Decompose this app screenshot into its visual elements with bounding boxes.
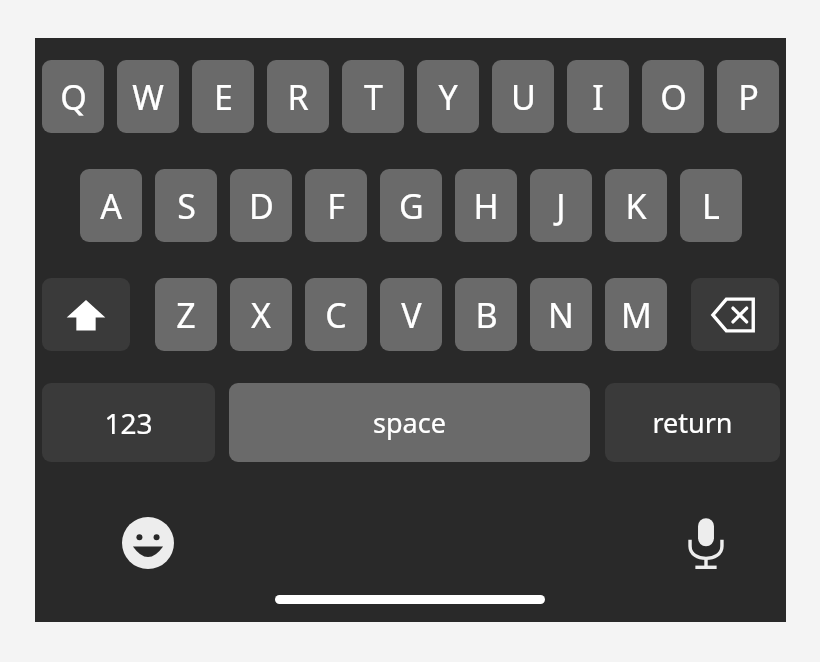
staticText: return (652, 404, 733, 441)
button[interactable]: Dictation (675, 512, 737, 574)
button[interactable]: T (342, 60, 404, 133)
button[interactable]: E (192, 60, 254, 133)
staticText: W (132, 74, 164, 120)
button[interactable]: Z (155, 278, 217, 351)
staticText: J (556, 183, 566, 229)
staticText: T (364, 74, 383, 120)
staticText: B (475, 292, 498, 338)
staticText: N (548, 292, 574, 338)
staticText: L (702, 183, 720, 229)
button[interactable]: space (229, 383, 590, 462)
staticText: K (625, 183, 647, 229)
staticText: Q (60, 74, 87, 120)
button[interactable]: P (717, 60, 779, 133)
button[interactable]: B (455, 278, 517, 351)
staticText: G (399, 183, 424, 229)
staticText: R (287, 74, 309, 120)
staticText: M (621, 292, 652, 338)
button[interactable]: G (380, 169, 442, 242)
staticText: H (473, 183, 499, 229)
button[interactable]: A (80, 169, 142, 242)
staticText: F (327, 183, 345, 229)
button[interactable]: R (267, 60, 329, 133)
button[interactable]: C (305, 278, 367, 351)
button[interactable]: N (530, 278, 592, 351)
button[interactable]: X (230, 278, 292, 351)
button[interactable]: return (605, 383, 780, 462)
staticText: C (325, 292, 347, 338)
staticText: O (660, 74, 687, 120)
button[interactable]: K (605, 169, 667, 242)
button[interactable]: Emoji (117, 512, 179, 574)
staticText: I (592, 74, 604, 120)
staticText: E (214, 74, 233, 120)
button[interactable]: U (492, 60, 554, 133)
staticText: A (100, 183, 122, 229)
staticText: space (373, 404, 446, 441)
staticText: D (249, 183, 274, 229)
button[interactable]: D (230, 169, 292, 242)
staticText: 123 (104, 404, 153, 442)
button[interactable]: L (680, 169, 742, 242)
button[interactable]: F (305, 169, 367, 242)
staticText: Z (176, 292, 196, 338)
staticText: U (511, 74, 536, 120)
button[interactable]: H (455, 169, 517, 242)
button[interactable]: Shift (42, 278, 130, 351)
button[interactable]: J (530, 169, 592, 242)
staticText: S (177, 183, 196, 229)
button[interactable]: 123 (42, 383, 215, 462)
staticText: V (401, 292, 422, 338)
staticText: P (738, 74, 759, 120)
button[interactable]: Y (417, 60, 479, 133)
button[interactable]: Backspace (691, 278, 779, 351)
button[interactable]: Q (42, 60, 104, 133)
staticText: X (251, 292, 271, 338)
button[interactable]: I (567, 60, 629, 133)
button[interactable]: O (642, 60, 704, 133)
staticText: Y (438, 74, 458, 120)
button[interactable]: S (155, 169, 217, 242)
button[interactable]: W (117, 60, 179, 133)
button[interactable]: M (605, 278, 667, 351)
button[interactable]: V (380, 278, 442, 351)
